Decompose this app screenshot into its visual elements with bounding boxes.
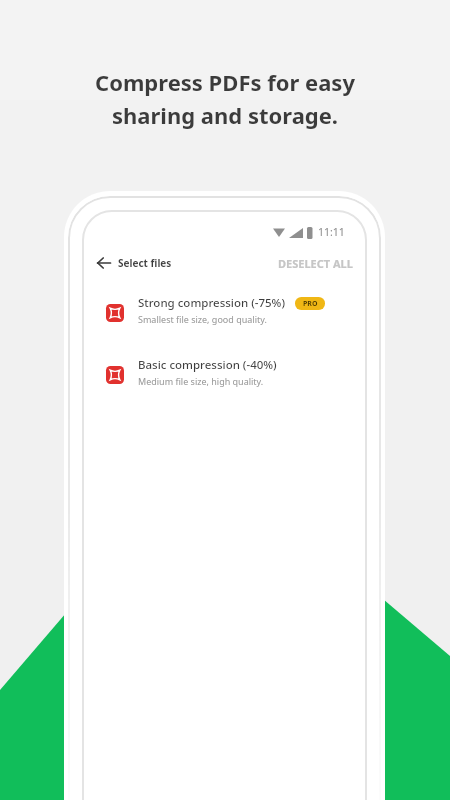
button[interactable] (105, 354, 353, 388)
staticText: Smallest file size, good quality. (138, 313, 267, 325)
button[interactable]: Select files (97, 254, 353, 272)
staticText: Compress PDFs for easy sharing and stora… (0, 67, 450, 130)
button[interactable] (105, 292, 353, 326)
staticText: Strong compression (-75%) (138, 295, 285, 311)
button[interactable]: DESELECT ALL (278, 256, 353, 271)
staticText: Medium file size, high quality. (138, 375, 264, 387)
staticText: 11:11 (318, 225, 345, 239)
staticText: Basic compression (-40%) (138, 357, 277, 373)
staticText: Select files (118, 256, 172, 270)
staticText: PRO (303, 299, 318, 309)
